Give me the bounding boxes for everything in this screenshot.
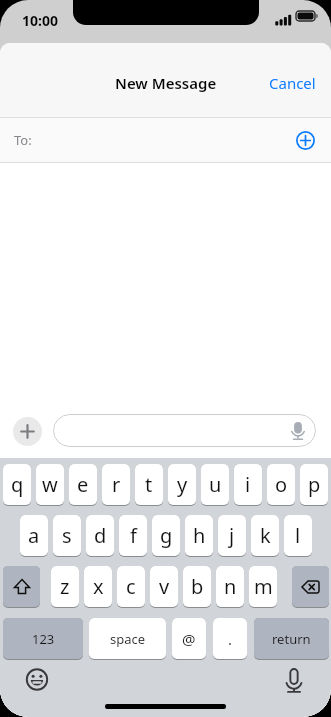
staticText: u xyxy=(209,471,222,498)
button[interactable]: q xyxy=(3,464,31,506)
button[interactable]: x xyxy=(84,566,112,608)
staticText: 10:00 xyxy=(22,11,58,30)
staticText: b xyxy=(191,573,204,600)
button[interactable]: m xyxy=(249,566,277,608)
staticText: s xyxy=(62,522,72,549)
staticText: x xyxy=(93,573,104,600)
button[interactable]: To: xyxy=(0,118,331,162)
staticText: c xyxy=(126,573,136,600)
staticText: w xyxy=(42,471,58,498)
staticText: return xyxy=(272,630,311,648)
staticText: space xyxy=(110,630,146,648)
button[interactable]: y xyxy=(168,464,196,506)
button[interactable]: p xyxy=(300,464,328,506)
button[interactable]: . xyxy=(213,618,247,660)
staticText: Cancel xyxy=(269,73,316,93)
button[interactable]: g xyxy=(152,515,180,557)
staticText: f xyxy=(130,522,137,549)
staticText: q xyxy=(11,471,24,498)
button[interactable] xyxy=(3,566,40,608)
staticText: a xyxy=(28,522,40,549)
button[interactable]: w xyxy=(36,464,64,506)
staticText: New Message xyxy=(115,73,217,93)
staticText: j xyxy=(229,522,235,549)
button[interactable]: t xyxy=(135,464,163,506)
staticText: h xyxy=(193,522,206,549)
button[interactable]: o xyxy=(267,464,295,506)
button[interactable]: Cancel xyxy=(269,73,316,93)
button[interactable]: j xyxy=(218,515,246,557)
button[interactable]: f xyxy=(119,515,147,557)
staticText: m xyxy=(254,573,273,600)
button[interactable]: s xyxy=(53,515,81,557)
button[interactable] xyxy=(53,414,316,447)
staticText: @ xyxy=(182,629,196,649)
button[interactable]: r xyxy=(102,464,130,506)
staticText: e xyxy=(77,471,89,498)
button[interactable]: b xyxy=(183,566,211,608)
staticText: z xyxy=(60,573,70,600)
button[interactable]: 123 xyxy=(3,618,83,660)
button[interactable] xyxy=(13,417,42,446)
staticText: g xyxy=(160,522,173,549)
staticText: y xyxy=(177,471,188,498)
staticText: i xyxy=(245,471,251,498)
button[interactable]: v xyxy=(150,566,178,608)
staticText: 123 xyxy=(32,630,55,648)
staticText: k xyxy=(260,522,271,549)
staticText: n xyxy=(224,573,237,600)
button[interactable] xyxy=(25,668,49,692)
staticText: . xyxy=(228,629,233,649)
button[interactable]: k xyxy=(251,515,279,557)
button[interactable]: z xyxy=(51,566,79,608)
button[interactable]: return xyxy=(254,618,329,660)
button[interactable]: @ xyxy=(172,618,206,660)
button[interactable]: d xyxy=(86,515,114,557)
button[interactable]: c xyxy=(117,566,145,608)
button[interactable]: e xyxy=(69,464,97,506)
button[interactable]: u xyxy=(201,464,229,506)
staticText: p xyxy=(308,471,321,498)
staticText: v xyxy=(159,573,170,600)
button[interactable]: l xyxy=(284,515,312,557)
staticText: o xyxy=(275,471,288,498)
staticText: l xyxy=(295,522,301,549)
button[interactable]: n xyxy=(216,566,244,608)
button[interactable] xyxy=(296,131,315,150)
staticText: d xyxy=(94,522,107,549)
button[interactable]: i xyxy=(234,464,262,506)
staticText: To: xyxy=(14,131,32,149)
staticText: r xyxy=(112,471,121,498)
button[interactable]: a xyxy=(20,515,48,557)
staticText: t xyxy=(145,471,153,498)
button[interactable]: space xyxy=(89,618,166,660)
button[interactable] xyxy=(284,667,304,694)
button[interactable] xyxy=(292,566,329,608)
button[interactable]: h xyxy=(185,515,213,557)
